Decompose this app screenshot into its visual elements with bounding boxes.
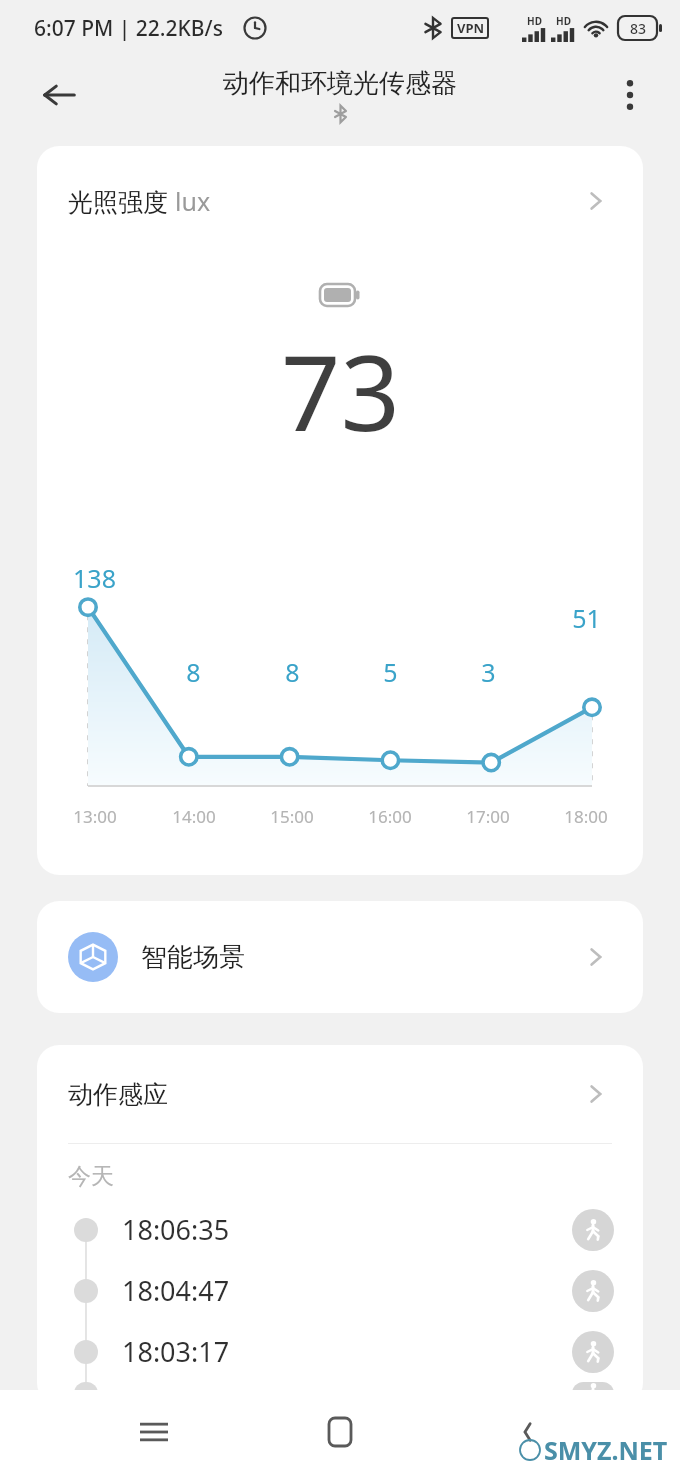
staticText: HD [556,14,571,28]
staticText: 73 [281,320,400,462]
staticText: 18:06:35 [122,1211,230,1248]
button[interactable]: More options [602,67,658,123]
button[interactable]: Recent apps [121,1399,187,1465]
button[interactable]: 智能场景 [37,901,643,1013]
staticText: 智能场景 [141,941,245,974]
staticText: 3 [481,655,496,689]
staticText: VPN [457,19,485,37]
staticText: 18:00 [564,805,608,828]
staticText: 13:00 [73,805,117,828]
button[interactable]: 18:02:19 [37,1382,643,1405]
button[interactable]: 光照强度 [37,146,643,256]
staticText: 18:04:47 [122,1272,230,1309]
staticText: 18:03:17 [122,1333,230,1370]
staticText: 17:00 [466,805,510,828]
staticText: 14:00 [172,805,216,828]
staticText: 6:07 PM | 22.2KB/s [34,14,223,43]
staticText: 光照强度 [68,184,175,218]
staticText: 8 [285,655,300,689]
staticText: 15:00 [270,805,314,828]
staticText: 51 [572,601,601,635]
staticText: 83 [630,19,647,38]
staticText: 5 [383,655,398,689]
button[interactable]: 18:04:47 [37,1260,643,1321]
button[interactable]: 18:06:35 [37,1199,643,1260]
staticText: lux [175,184,211,218]
button[interactable]: 动作感应 [37,1045,643,1143]
staticText: 16:00 [368,805,412,828]
staticText: HD [527,14,542,28]
staticText: 动作感应 [68,1079,168,1110]
button[interactable]: Back [28,64,90,126]
button[interactable]: Home [307,1399,373,1465]
staticText: 138 [73,561,116,595]
staticText: 今天 [68,1162,114,1191]
button[interactable]: Back [494,1399,560,1465]
button[interactable]: 18:03:17 [37,1321,643,1382]
staticText: SMYZ.NET [544,1433,668,1467]
staticText: 8 [186,655,201,689]
staticText: 动作和环境光传感器 [223,67,457,100]
